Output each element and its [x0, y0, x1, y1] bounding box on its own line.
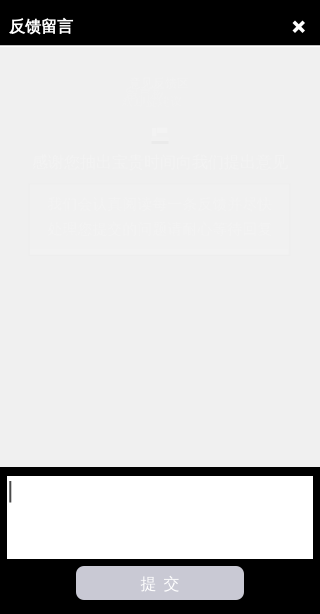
staticText: 提交 — [140, 574, 179, 594]
staticText: 反馈留言 — [9, 17, 73, 37]
button[interactable]: 提交 — [76, 566, 244, 600]
button[interactable]: 关闭 — [285, 13, 312, 40]
